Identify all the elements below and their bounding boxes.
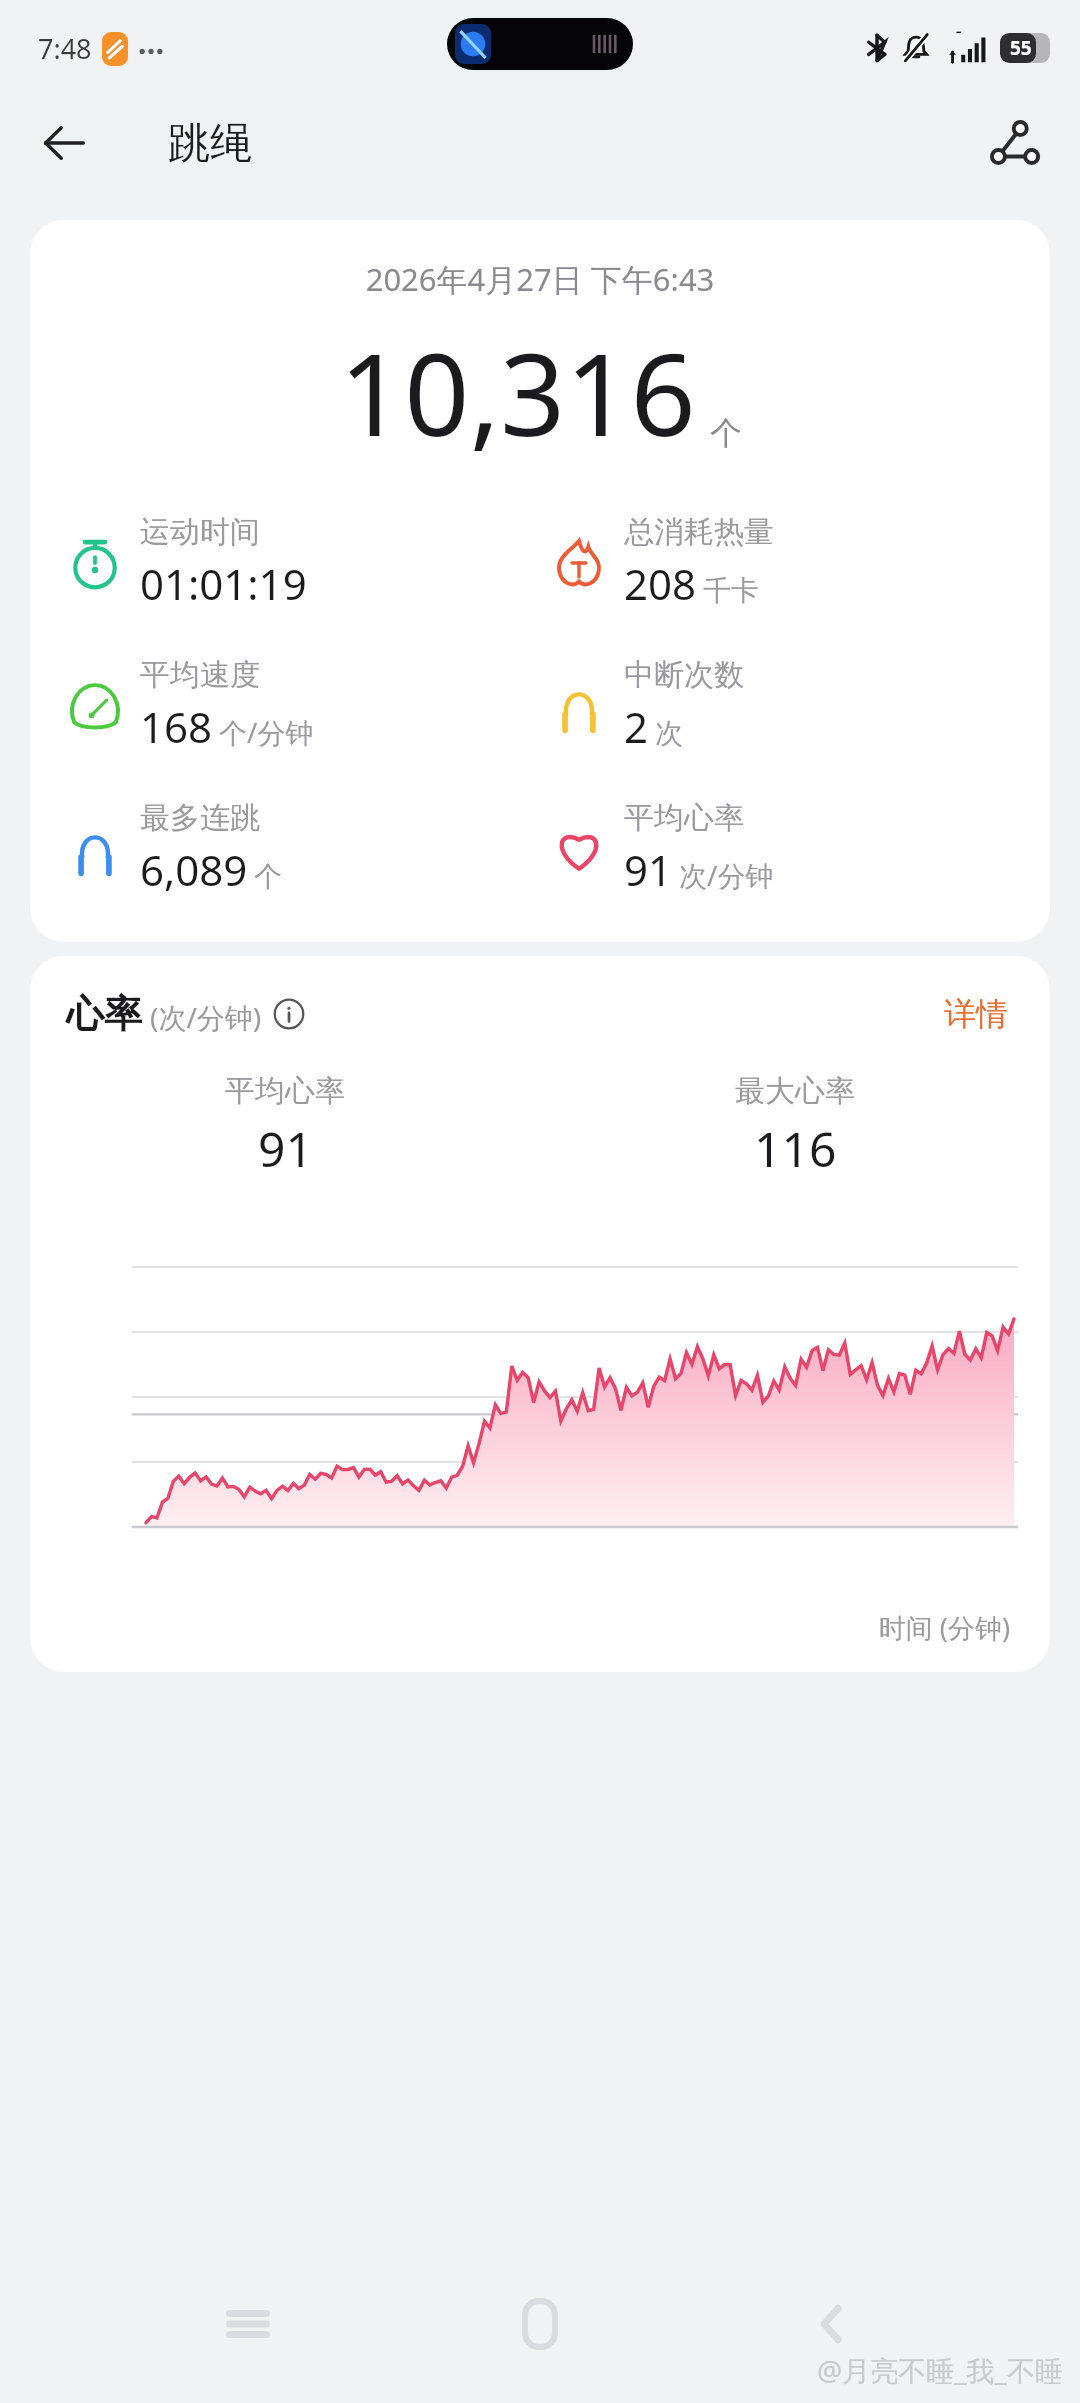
staticText: 千卡 — [703, 573, 759, 608]
button[interactable]: Back — [26, 105, 102, 181]
staticText: 心率 — [66, 990, 142, 1038]
staticText: 总消耗热量 — [624, 513, 774, 551]
staticText: 2 — [624, 698, 649, 755]
staticText: 91 — [258, 1116, 313, 1181]
staticText: 个 — [254, 859, 282, 894]
staticText: 中断次数 — [624, 656, 744, 694]
staticText: 个 — [710, 413, 742, 453]
staticText: 10,316 — [339, 314, 696, 469]
staticText: 次 — [655, 716, 683, 751]
staticText: 时间 (分钟) — [30, 1609, 1010, 1646]
staticText: 6,089 — [140, 841, 248, 898]
staticText: 2026年4月27日 下午6:43 — [30, 258, 1050, 300]
staticText: 116 — [754, 1116, 837, 1181]
staticText: 详情 — [944, 994, 1008, 1034]
staticText: 最多连跳 — [140, 799, 260, 837]
staticText: 最大心率 — [735, 1072, 855, 1110]
staticText: 平均速度 — [140, 656, 260, 694]
button[interactable]: Share — [974, 103, 1054, 183]
staticText: 运动时间 — [140, 513, 260, 551]
staticText: @月亮不睡_我_不睡 — [817, 2351, 1064, 2389]
staticText: 01:01:19 — [140, 555, 307, 612]
button[interactable]: Info — [272, 997, 306, 1031]
staticText: 平均心率 — [624, 799, 744, 837]
staticText: 次/分钟 — [679, 856, 774, 894]
button[interactable]: 2026年4月27日 下午6:43 — [30, 220, 1050, 942]
staticText: 7:48 — [38, 30, 92, 67]
staticText: 个/分钟 — [219, 713, 314, 751]
button[interactable]: Recents — [203, 2279, 293, 2369]
staticText: (次/分钟) — [150, 998, 262, 1036]
button[interactable]: Home — [495, 2279, 585, 2369]
button[interactable]: 详情 — [938, 990, 1014, 1038]
staticText: 91 — [624, 841, 673, 898]
staticText: 跳绳 — [168, 117, 252, 170]
staticText: 平均心率 — [225, 1072, 345, 1110]
staticText: 208 — [624, 555, 697, 612]
staticText: 55 — [1010, 35, 1032, 61]
button[interactable]: Back — [788, 2279, 878, 2369]
staticText: 168 — [140, 698, 213, 755]
